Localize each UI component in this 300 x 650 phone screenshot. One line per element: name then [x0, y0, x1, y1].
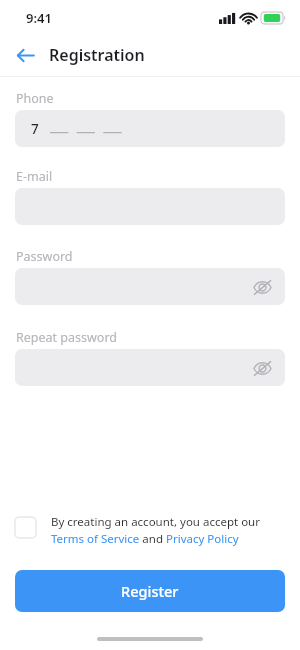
- staticText: 9:41: [26, 9, 52, 27]
- staticText: Password: [16, 248, 73, 265]
- staticText: Registration: [49, 44, 145, 66]
- button[interactable]: Show password: [15, 268, 285, 305]
- staticText: Phone: [16, 90, 54, 107]
- staticText: 7: [31, 120, 39, 138]
- button[interactable]: By creating an account, you accept our T…: [51, 514, 282, 546]
- button[interactable]: Show password: [15, 349, 285, 386]
- button[interactable]: Register: [15, 570, 285, 612]
- button[interactable]: Show password: [247, 353, 277, 383]
- button[interactable]: Show password: [247, 272, 277, 302]
- button[interactable]: Accept terms checkbox: [14, 516, 37, 539]
- staticText: Register: [121, 581, 179, 601]
- button[interactable]: 7: [15, 110, 285, 147]
- staticText: Repeat password: [16, 329, 118, 346]
- staticText: E-mail: [16, 168, 53, 185]
- button[interactable]: Back: [6, 36, 44, 74]
